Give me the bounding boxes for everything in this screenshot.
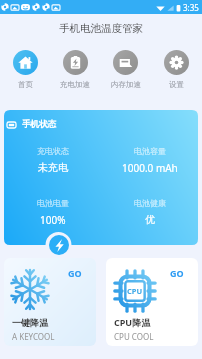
staticText: 100% <box>40 213 66 227</box>
staticText: 手机状态 <box>22 119 56 130</box>
staticText: 电池健康 <box>134 198 166 208</box>
staticText: CPU降温 <box>114 316 151 328</box>
staticText: CPU COOL <box>114 331 154 342</box>
button[interactable]: Charge boost <box>50 45 100 89</box>
button[interactable]: GO <box>106 258 198 346</box>
button[interactable]: Memory boost <box>100 45 151 89</box>
staticText: GO <box>170 267 184 279</box>
staticText: 设置 <box>169 80 184 89</box>
staticText: 3:35 <box>183 2 199 13</box>
staticText: 未充电 <box>38 161 68 174</box>
staticText: 内存加速 <box>111 80 141 89</box>
staticText: CPU <box>127 286 143 296</box>
staticText: 首页 <box>18 80 33 89</box>
staticText: 1000.0 mAh <box>122 161 178 175</box>
button[interactable]: Settings <box>151 45 202 89</box>
staticText: 充电加速 <box>60 80 90 89</box>
button[interactable]: Boost <box>49 235 69 255</box>
staticText: 电池电量 <box>37 198 69 208</box>
staticText: 手机电池温度管家 <box>59 22 143 35</box>
staticText: GO <box>68 267 82 279</box>
staticText: A KEYCOOL <box>12 331 55 342</box>
staticText: 一键降温 <box>12 317 48 328</box>
staticText: 优 <box>145 213 155 226</box>
button[interactable]: Home <box>0 45 50 89</box>
staticText: 电池容量 <box>134 146 166 156</box>
button[interactable]: GO <box>4 258 96 346</box>
staticText: 充电状态 <box>37 146 69 156</box>
